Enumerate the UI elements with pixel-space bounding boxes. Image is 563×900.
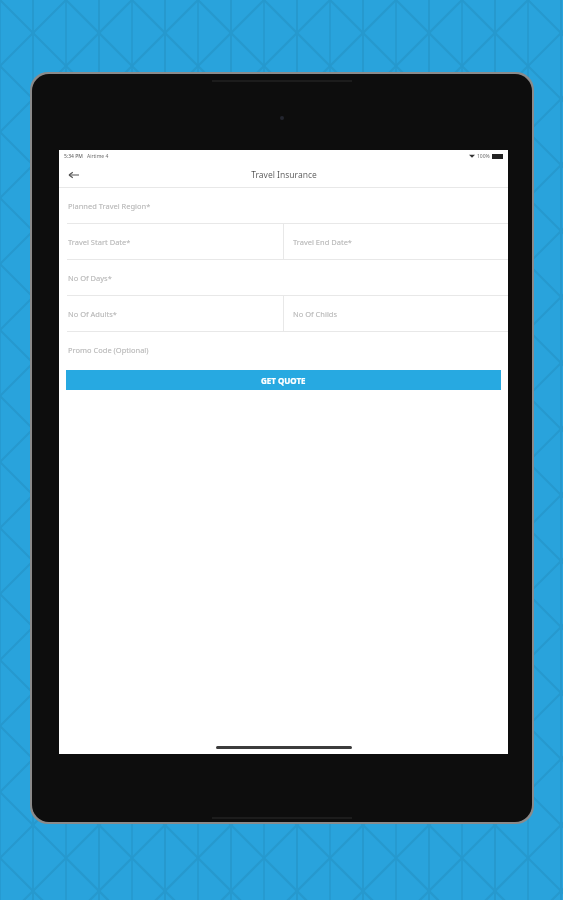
staticText: GET QUOTE: [261, 375, 306, 386]
button[interactable]: Back: [65, 166, 83, 184]
staticText: Planned Travel Region*: [68, 201, 151, 211]
staticText: Airtime 4: [87, 153, 109, 160]
staticText: Travel Start Date*: [68, 237, 131, 247]
button[interactable]: Promo Code (Optional): [59, 332, 508, 367]
button[interactable]: Planned Travel Region*: [59, 188, 508, 223]
staticText: No Of Adults*: [68, 309, 117, 319]
staticText: 100%: [477, 153, 490, 160]
staticText: No Of Days*: [68, 273, 112, 283]
staticText: Promo Code (Optional): [68, 345, 149, 355]
button[interactable]: GET QUOTE: [66, 370, 501, 390]
staticText: No Of Childs: [293, 309, 338, 319]
staticText: Travel Insurance: [251, 169, 317, 181]
button[interactable]: No Of Days*: [59, 260, 508, 295]
staticText: Travel End Date*: [293, 237, 352, 247]
staticText: 5:34 PM: [64, 153, 83, 160]
